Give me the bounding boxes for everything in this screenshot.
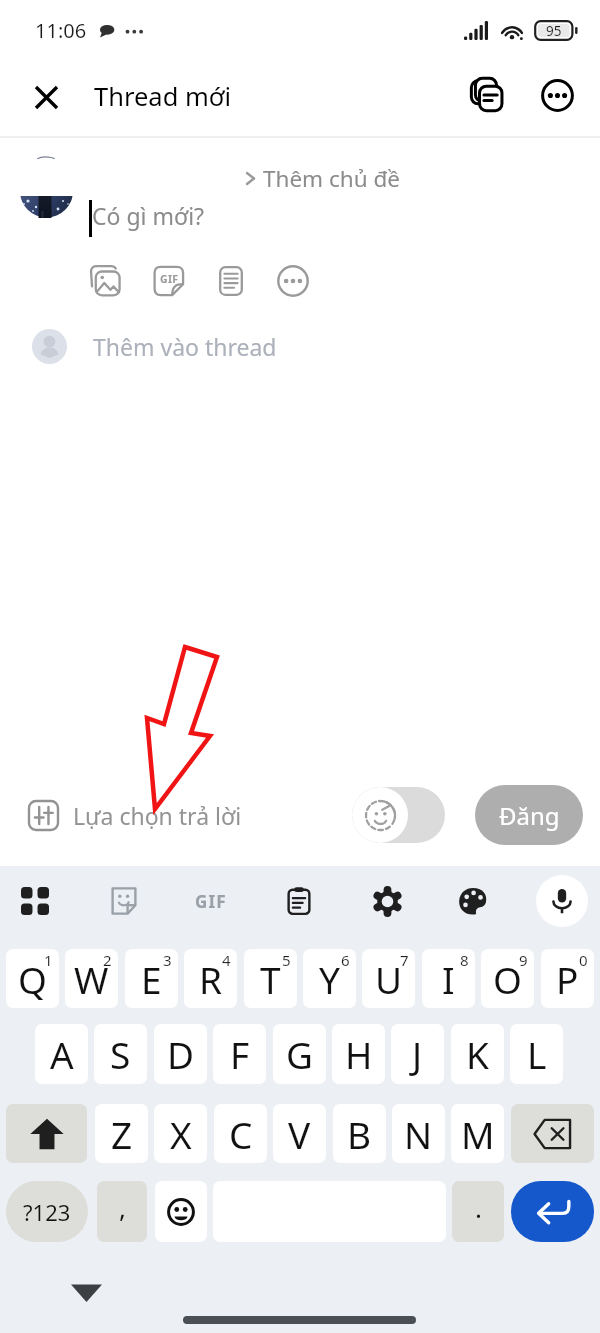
staticText: C	[229, 1109, 253, 1159]
button[interactable]: N	[392, 1104, 445, 1163]
staticText: Y	[319, 954, 340, 1004]
staticText: R	[199, 954, 223, 1004]
button[interactable]: Đăng	[475, 785, 583, 845]
staticText: T	[260, 954, 281, 1004]
button[interactable]: O	[481, 949, 534, 1008]
staticText: O	[493, 954, 522, 1004]
staticText: 95	[546, 22, 562, 40]
button[interactable]: Y	[303, 949, 356, 1008]
button[interactable]: Shift	[6, 1104, 87, 1163]
staticText: N	[404, 1109, 433, 1159]
staticText: GIF	[160, 272, 179, 286]
staticText: 4	[222, 950, 231, 970]
button[interactable]: F	[213, 1024, 266, 1084]
button[interactable]: Voice input	[536, 875, 588, 927]
staticText: 3	[163, 950, 172, 970]
staticText: W	[74, 954, 109, 1004]
button[interactable]: V	[273, 1104, 326, 1163]
other: Hide keyboard	[71, 1280, 102, 1305]
button[interactable]: K	[451, 1024, 504, 1084]
button[interactable]: Emoji	[155, 1181, 207, 1242]
button[interactable]: Clipboard	[273, 875, 325, 927]
button[interactable]: Drafts	[464, 72, 510, 118]
button[interactable]: Hide emoji reactions toggle	[352, 787, 445, 843]
staticText: Có gì mới?	[92, 200, 205, 231]
staticText: 7	[400, 950, 409, 970]
button[interactable]: Thêm vào thread	[0, 319, 600, 373]
staticText: K	[466, 1029, 489, 1079]
staticText: H	[345, 1029, 373, 1079]
button[interactable]: L	[510, 1024, 563, 1084]
button[interactable]: H	[332, 1024, 385, 1084]
staticText: ?123	[23, 1197, 71, 1227]
button[interactable]: S	[94, 1024, 147, 1084]
button[interactable]: P	[541, 949, 594, 1008]
staticText: Q	[18, 954, 47, 1004]
button[interactable]: Close	[24, 75, 68, 119]
button[interactable]: M	[451, 1104, 504, 1163]
staticText: 1	[44, 950, 53, 970]
button[interactable]: R	[184, 949, 237, 1008]
button[interactable]: More attachments	[270, 258, 316, 304]
button[interactable]: Theme	[447, 875, 499, 927]
button[interactable]: J	[391, 1024, 444, 1084]
button[interactable]: C	[214, 1104, 267, 1163]
button[interactable]: Add photo	[84, 258, 130, 304]
staticText: A	[50, 1029, 74, 1079]
staticText: 8	[460, 950, 469, 970]
staticText: S	[110, 1029, 131, 1079]
button[interactable]: A	[35, 1024, 88, 1084]
button[interactable]: Add text	[208, 258, 254, 304]
staticText: I	[442, 954, 455, 1004]
button[interactable]: Z	[95, 1104, 148, 1163]
button[interactable]: B	[333, 1104, 386, 1163]
staticText: U	[375, 954, 403, 1004]
button[interactable]: X	[154, 1104, 207, 1163]
button[interactable]: Stickers	[98, 875, 150, 927]
staticText: Z	[111, 1109, 133, 1159]
button[interactable]: Thêm chủ đề	[245, 163, 401, 194]
staticText: V	[288, 1109, 311, 1159]
staticText: G	[286, 1029, 313, 1079]
staticText: 11:06	[35, 17, 87, 44]
button[interactable]: D	[154, 1024, 207, 1084]
button[interactable]: G	[273, 1024, 326, 1084]
button[interactable]: Settings	[361, 875, 413, 927]
button[interactable]: E	[125, 949, 178, 1008]
button[interactable]: ,	[97, 1181, 147, 1242]
staticText: .	[475, 1190, 482, 1225]
button[interactable]: Backspace	[511, 1104, 594, 1163]
button[interactable]: More options	[534, 72, 580, 118]
staticText: B	[347, 1109, 372, 1159]
button[interactable]: Q	[6, 949, 59, 1008]
button[interactable]: Enter	[511, 1181, 594, 1242]
staticText: L	[527, 1029, 547, 1079]
button[interactable]: GIF	[185, 875, 237, 927]
staticText: Thêm chủ đề	[263, 163, 401, 194]
staticText: ,	[119, 1190, 126, 1225]
button[interactable]: ?123	[6, 1181, 88, 1242]
button[interactable]: Apps	[9, 875, 61, 927]
staticText: 0	[579, 950, 588, 970]
staticText: 9	[519, 950, 528, 970]
button[interactable]: .	[452, 1181, 504, 1242]
button[interactable]: T	[244, 949, 297, 1008]
button[interactable]: I	[422, 949, 475, 1008]
staticText: Đăng	[499, 799, 560, 832]
staticText: E	[141, 954, 162, 1004]
button[interactable]: W	[65, 949, 118, 1008]
staticText: 2	[103, 950, 112, 970]
staticText: J	[412, 1029, 423, 1079]
button[interactable]: Add GIF	[146, 258, 192, 304]
staticText: M	[461, 1109, 495, 1159]
button[interactable]: Lựa chọn trả lời	[27, 799, 242, 832]
button[interactable]: U	[362, 949, 415, 1008]
staticText: 5	[282, 950, 291, 970]
staticText: Thêm vào thread	[93, 331, 277, 362]
staticText: D	[167, 1029, 195, 1079]
staticText: Thread mới	[94, 79, 232, 114]
staticText: Lựa chọn trả lời	[73, 800, 242, 831]
staticText: 6	[341, 950, 350, 970]
staticText: GIF	[195, 890, 227, 913]
